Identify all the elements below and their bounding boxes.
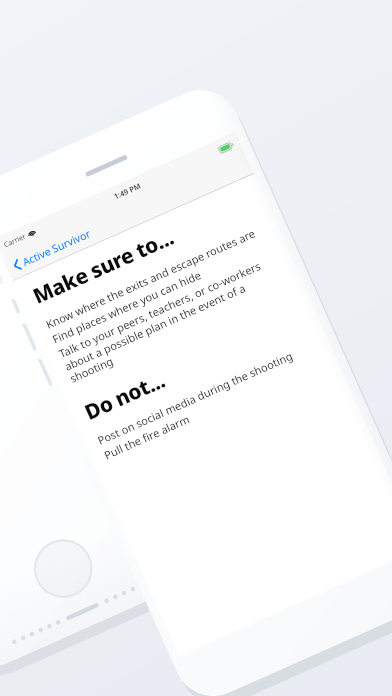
staticText: Active Survivor xyxy=(20,226,93,269)
button[interactable]: Back xyxy=(7,222,96,277)
staticText: Make sure to... xyxy=(28,223,178,311)
button[interactable]: Know where the exits and escape routes a… xyxy=(43,219,272,333)
button[interactable]: Pull the fire alarm xyxy=(101,350,330,463)
staticText: 1:49 PM xyxy=(112,180,143,201)
button[interactable]: Talk to your peers, teachers, or co-work… xyxy=(56,248,296,387)
button[interactable]: Find places where you can hide xyxy=(50,234,278,347)
staticText: Do not... xyxy=(80,366,169,427)
button[interactable]: Post on social media during the shooting xyxy=(95,335,323,449)
staticText: Carrier xyxy=(2,232,28,250)
other: Back xyxy=(11,258,23,272)
